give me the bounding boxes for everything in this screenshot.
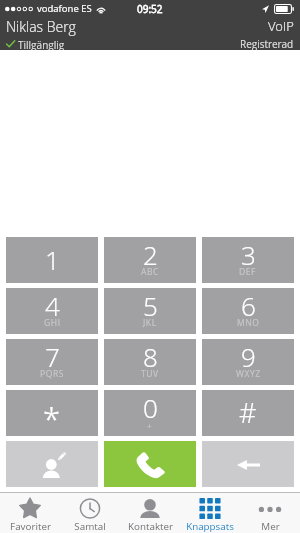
- button[interactable]: 2: [104, 237, 196, 283]
- other: Location: [262, 5, 269, 13]
- staticText: GHI: [44, 317, 61, 329]
- staticText: 9: [241, 339, 256, 374]
- button[interactable]: 8: [104, 339, 196, 385]
- staticText: 6: [241, 288, 256, 323]
- button[interactable]: More: [240, 493, 300, 533]
- staticText: 0: [143, 390, 158, 425]
- button[interactable]: 4: [6, 288, 98, 334]
- button[interactable]: 1: [6, 237, 98, 283]
- staticText: VoIP: [268, 17, 294, 35]
- staticText: 7: [45, 339, 60, 374]
- button[interactable]: 6: [202, 288, 294, 334]
- staticText: 5: [143, 288, 158, 323]
- staticText: +: [147, 420, 153, 431]
- button[interactable]: Call: [104, 441, 196, 487]
- button[interactable]: 0: [104, 390, 196, 436]
- button[interactable]: 9: [202, 339, 294, 385]
- other: Recents: [78, 498, 102, 519]
- other: Favorites: [18, 498, 42, 519]
- button[interactable]: Keypad: [180, 493, 240, 533]
- button[interactable]: Recents: [60, 493, 120, 533]
- button[interactable]: 5: [104, 288, 196, 334]
- staticText: 3: [241, 237, 256, 272]
- staticText: 8: [143, 339, 158, 374]
- staticText: vodafone ES: [37, 2, 92, 15]
- staticText: Kontakter: [128, 520, 173, 533]
- other: Keypad: [198, 498, 222, 519]
- button[interactable]: Backspace: [202, 441, 294, 487]
- staticText: Tillgänglig: [18, 38, 65, 50]
- button[interactable]: 3: [202, 237, 294, 283]
- other: Contacts: [138, 498, 162, 519]
- staticText: 2: [143, 237, 158, 272]
- staticText: 4: [45, 288, 60, 323]
- staticText: Samtal: [74, 520, 106, 533]
- button[interactable]: #: [202, 390, 294, 436]
- staticText: Favoriter: [10, 520, 51, 533]
- button[interactable]: *: [6, 390, 98, 436]
- button[interactable]: 7: [6, 339, 98, 385]
- staticText: JKL: [143, 317, 157, 329]
- staticText: DEF: [239, 266, 257, 278]
- button[interactable]: Contacts: [120, 493, 180, 533]
- staticText: Knappsats: [186, 520, 234, 533]
- staticText: 1: [45, 242, 60, 277]
- staticText: *: [43, 398, 61, 440]
- staticText: Registrerad: [240, 37, 294, 50]
- staticText: MNO: [237, 317, 260, 329]
- staticText: Mer: [261, 520, 280, 533]
- staticText: PQRS: [40, 368, 65, 380]
- staticText: 09:52: [137, 2, 163, 16]
- staticText: #: [239, 394, 257, 431]
- staticText: WXYZ: [236, 368, 261, 380]
- button[interactable]: Add contact: [6, 441, 98, 487]
- button[interactable]: Favorites: [0, 493, 60, 533]
- staticText: ABC: [141, 266, 160, 278]
- other: More: [258, 498, 282, 519]
- staticText: TUV: [141, 368, 159, 380]
- staticText: Niklas Berg: [6, 17, 76, 36]
